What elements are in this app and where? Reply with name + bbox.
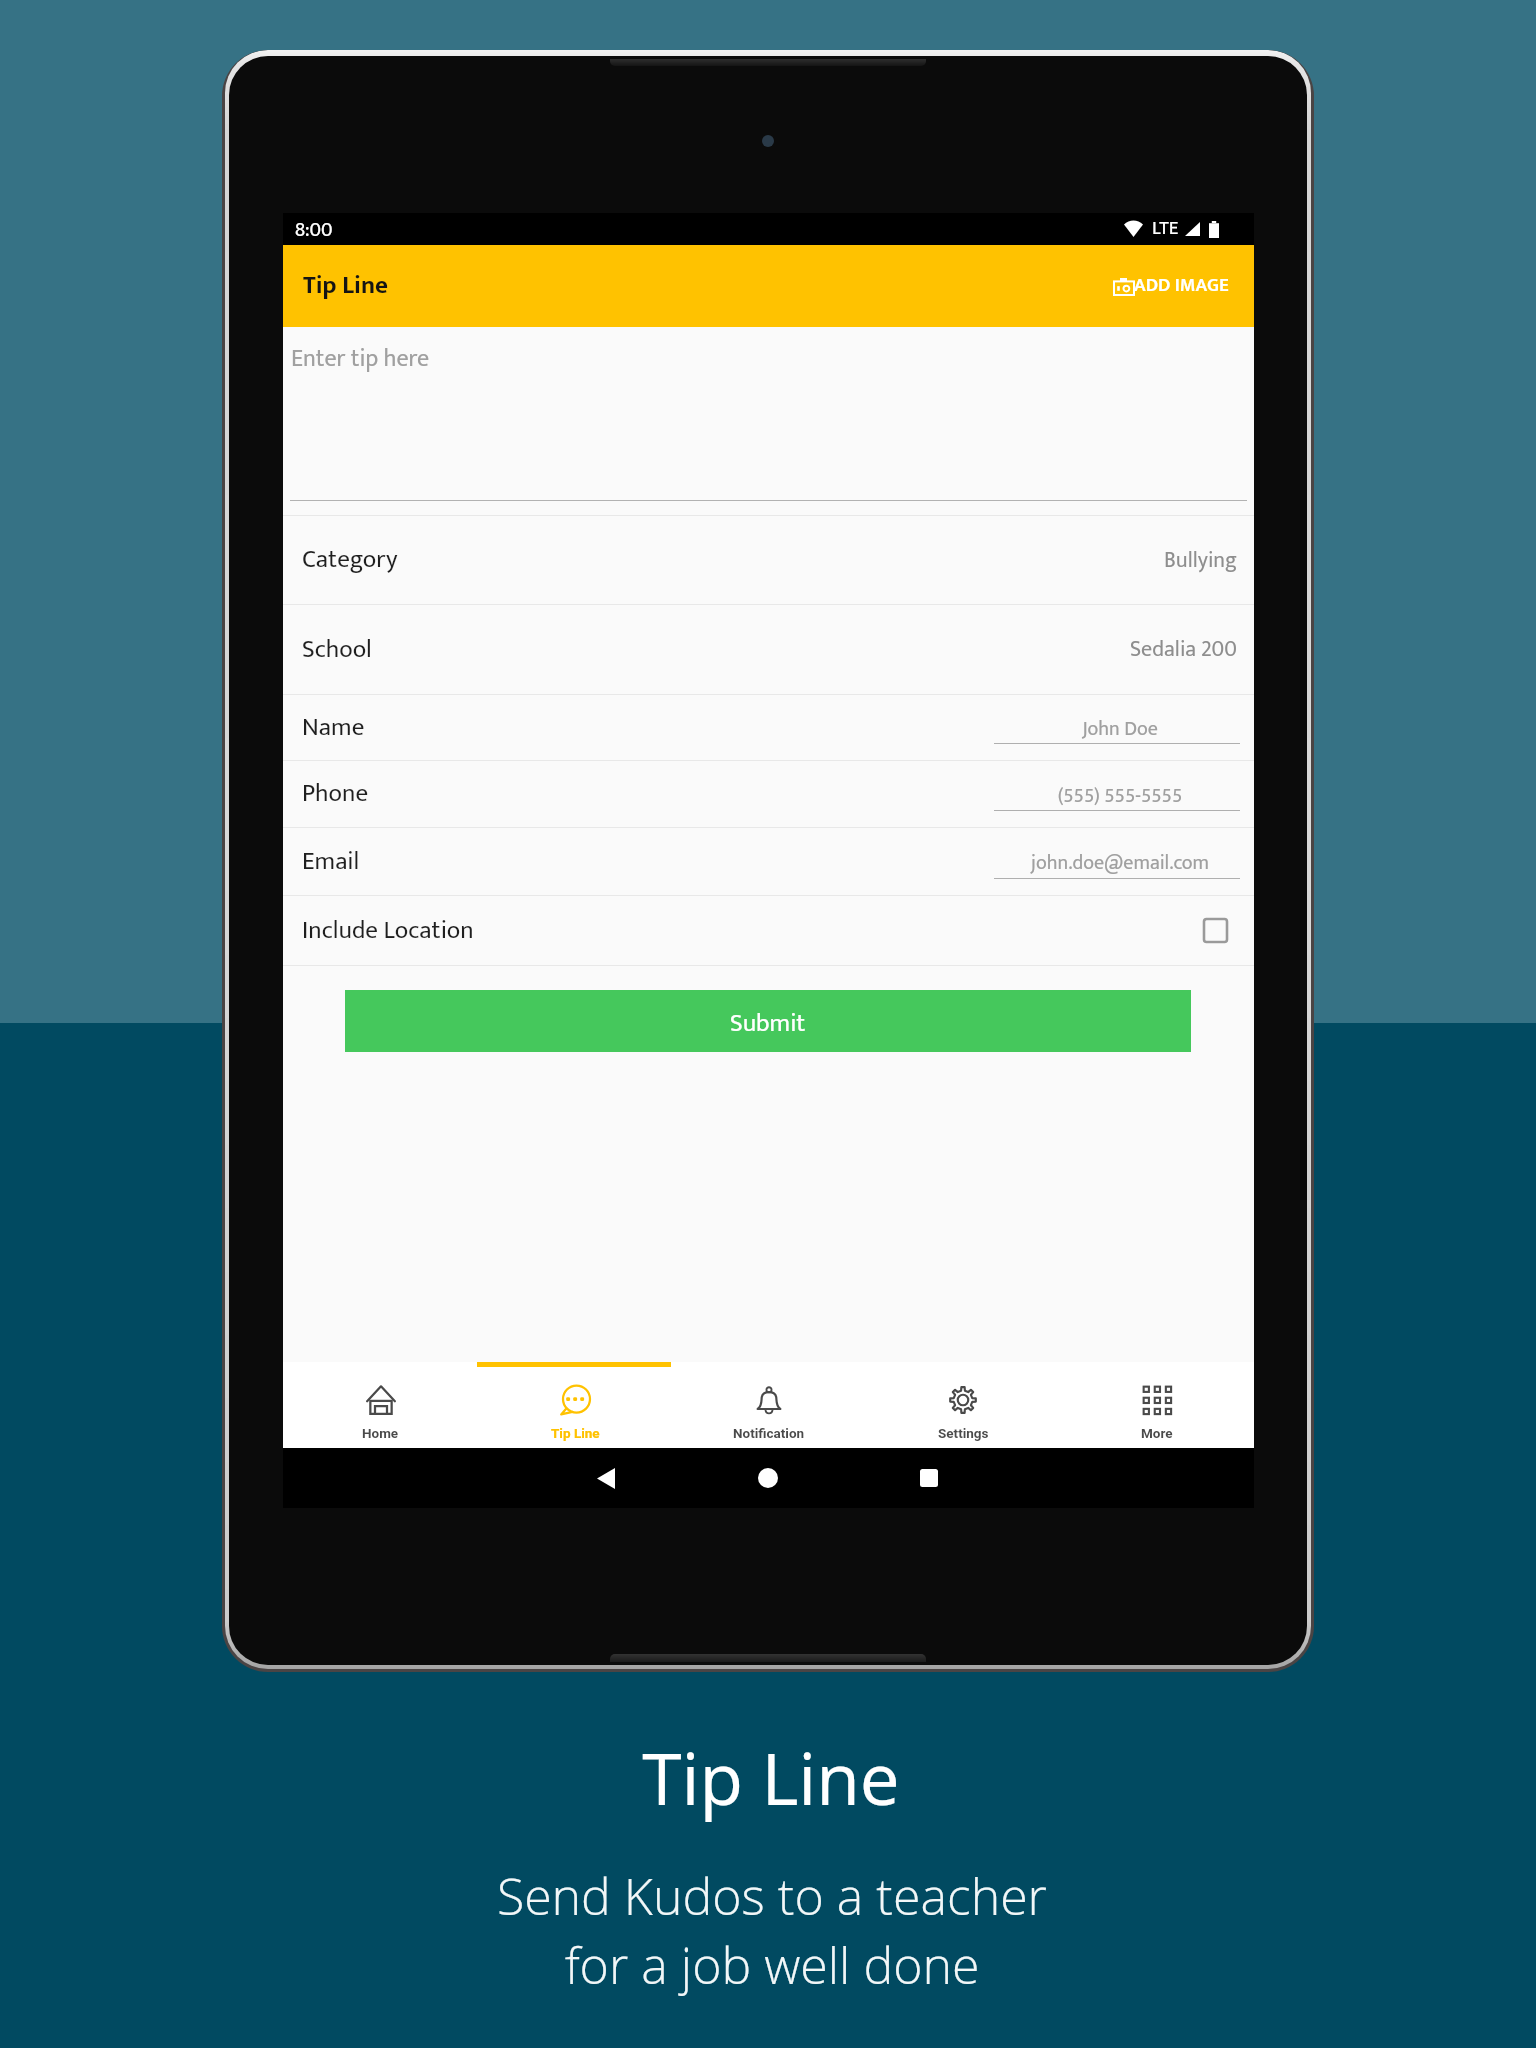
staticText: Send Kudos to a teacher for a job well d…	[4, 1862, 1536, 1999]
staticText: Settings	[938, 1425, 989, 1441]
staticText: Category	[302, 539, 398, 581]
button[interactable]: Phone	[283, 761, 1254, 827]
button[interactable]: Recent apps	[904, 1448, 954, 1508]
button[interactable]: Name	[283, 695, 1254, 760]
button[interactable]: Submit	[345, 990, 1191, 1052]
staticText: Email	[302, 841, 360, 883]
staticText: Tip Line	[303, 265, 389, 307]
staticText: (555) 555-5555	[997, 779, 1243, 812]
staticText: john.doe@email.com	[997, 846, 1243, 879]
staticText: Notification	[733, 1425, 805, 1441]
button[interactable]: Tip Line	[478, 1367, 672, 1448]
staticText: LTE	[1152, 213, 1179, 245]
button[interactable]: Category	[283, 516, 1254, 604]
staticText: Home	[362, 1425, 399, 1441]
staticText: Phone	[302, 773, 368, 815]
staticText: John Doe	[997, 712, 1243, 745]
button[interactable]: Notification	[672, 1367, 866, 1448]
button[interactable]: Settings	[866, 1367, 1060, 1448]
staticText: Tip Line	[551, 1425, 600, 1441]
staticText: Enter tip here	[291, 339, 430, 379]
staticText: Name	[302, 707, 365, 749]
button[interactable]: ADD IMAGE	[1100, 256, 1254, 316]
button[interactable]: School	[283, 605, 1254, 694]
staticText: Tip Line	[3, 1729, 1536, 1826]
staticText: 8:00	[295, 213, 333, 245]
staticText: School	[302, 629, 372, 671]
staticText: More	[1141, 1425, 1173, 1441]
staticText: Include Location	[302, 910, 474, 952]
button[interactable]: Home	[743, 1448, 793, 1508]
staticText: ADD IMAGE	[1134, 270, 1229, 302]
staticText: Sedalia 200	[1130, 631, 1237, 668]
button[interactable]: More	[1060, 1367, 1254, 1448]
button[interactable]: Email	[283, 828, 1254, 895]
button[interactable]: Back	[581, 1448, 631, 1508]
button[interactable]: Enter tip here	[283, 327, 1254, 515]
staticText: Submit	[730, 1003, 806, 1045]
staticText: Bullying	[1164, 542, 1237, 579]
button[interactable]: Home	[283, 1367, 478, 1448]
button[interactable]: Include Location	[283, 896, 1254, 965]
